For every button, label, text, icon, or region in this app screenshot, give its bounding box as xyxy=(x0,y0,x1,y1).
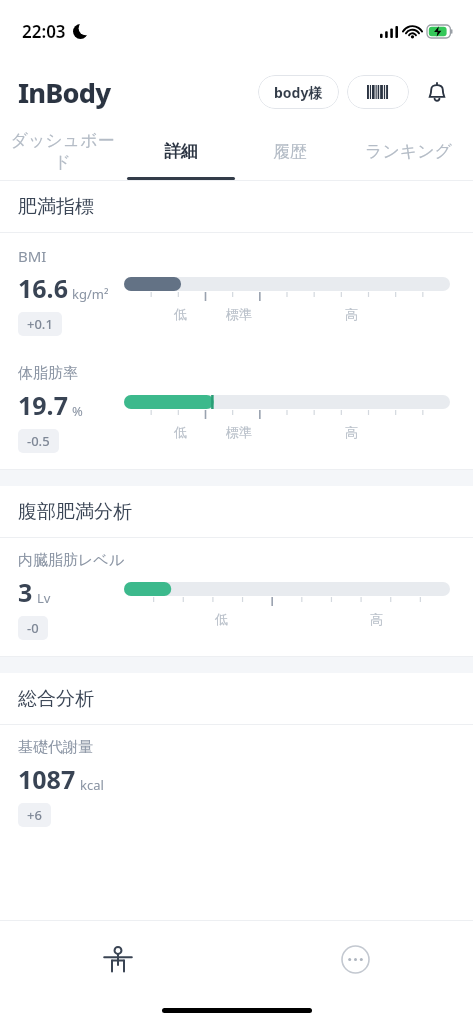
staticText: 高 xyxy=(345,424,358,440)
staticText: +0.1 xyxy=(27,315,53,333)
staticText: 高 xyxy=(345,306,358,322)
staticText: 詳細 xyxy=(164,141,198,162)
button[interactable]: Barcode xyxy=(347,75,409,109)
staticText: 22:03 xyxy=(22,20,66,43)
staticText: % xyxy=(72,402,83,420)
staticText: 1087 xyxy=(18,762,76,796)
staticText: -0 xyxy=(27,619,39,637)
button[interactable]: body様 xyxy=(258,75,339,109)
staticText: 内臓脂肪レベル xyxy=(18,551,125,570)
staticText: kcal xyxy=(80,776,104,794)
staticText: 19.7 xyxy=(18,388,68,422)
staticText: +6 xyxy=(27,806,42,824)
button[interactable]: More xyxy=(329,933,381,985)
staticText: 低 xyxy=(174,306,187,322)
staticText: 低 xyxy=(174,424,187,440)
staticText: 体脂肪率 xyxy=(18,364,78,383)
button[interactable]: Body composition xyxy=(92,933,144,985)
button[interactable]: 詳細 xyxy=(125,122,237,180)
staticText: kg/m² xyxy=(72,285,109,303)
staticText: Lv xyxy=(37,589,51,607)
button[interactable]: ダッシュボード xyxy=(0,122,125,180)
staticText: 低 xyxy=(215,611,228,627)
staticText: 標準 xyxy=(226,424,252,440)
staticText: 高 xyxy=(370,611,383,627)
button[interactable]: Notifications xyxy=(415,70,459,114)
staticText: 肥満指標 xyxy=(18,195,94,219)
staticText: BMI xyxy=(18,246,47,266)
staticText: ランキング xyxy=(365,141,452,162)
staticText: body様 xyxy=(274,83,323,102)
staticText: -0.5 xyxy=(27,432,50,450)
staticText: 総合分析 xyxy=(18,687,94,711)
staticText: 基礎代謝量 xyxy=(18,738,93,757)
staticText: 履歴 xyxy=(273,141,307,162)
staticText: ダッシュボード xyxy=(6,130,119,173)
staticText: 標準 xyxy=(226,306,252,322)
staticText: 腹部肥満分析 xyxy=(18,500,132,524)
button[interactable]: ランキング xyxy=(343,122,473,180)
staticText: InBody xyxy=(18,74,111,111)
staticText: 3 xyxy=(18,575,33,609)
button[interactable]: 履歴 xyxy=(237,122,343,180)
staticText: 16.6 xyxy=(18,271,68,305)
